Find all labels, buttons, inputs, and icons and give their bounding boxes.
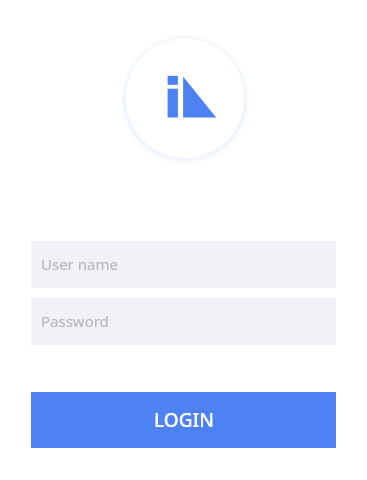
staticText: LOGIN (154, 407, 214, 433)
button[interactable]: User name (31, 241, 336, 288)
staticText: Password (41, 311, 109, 331)
other: App logo (111, 24, 259, 172)
button[interactable]: Password (31, 298, 336, 345)
staticText: User name (41, 254, 118, 274)
button[interactable]: LOGIN (31, 392, 336, 448)
